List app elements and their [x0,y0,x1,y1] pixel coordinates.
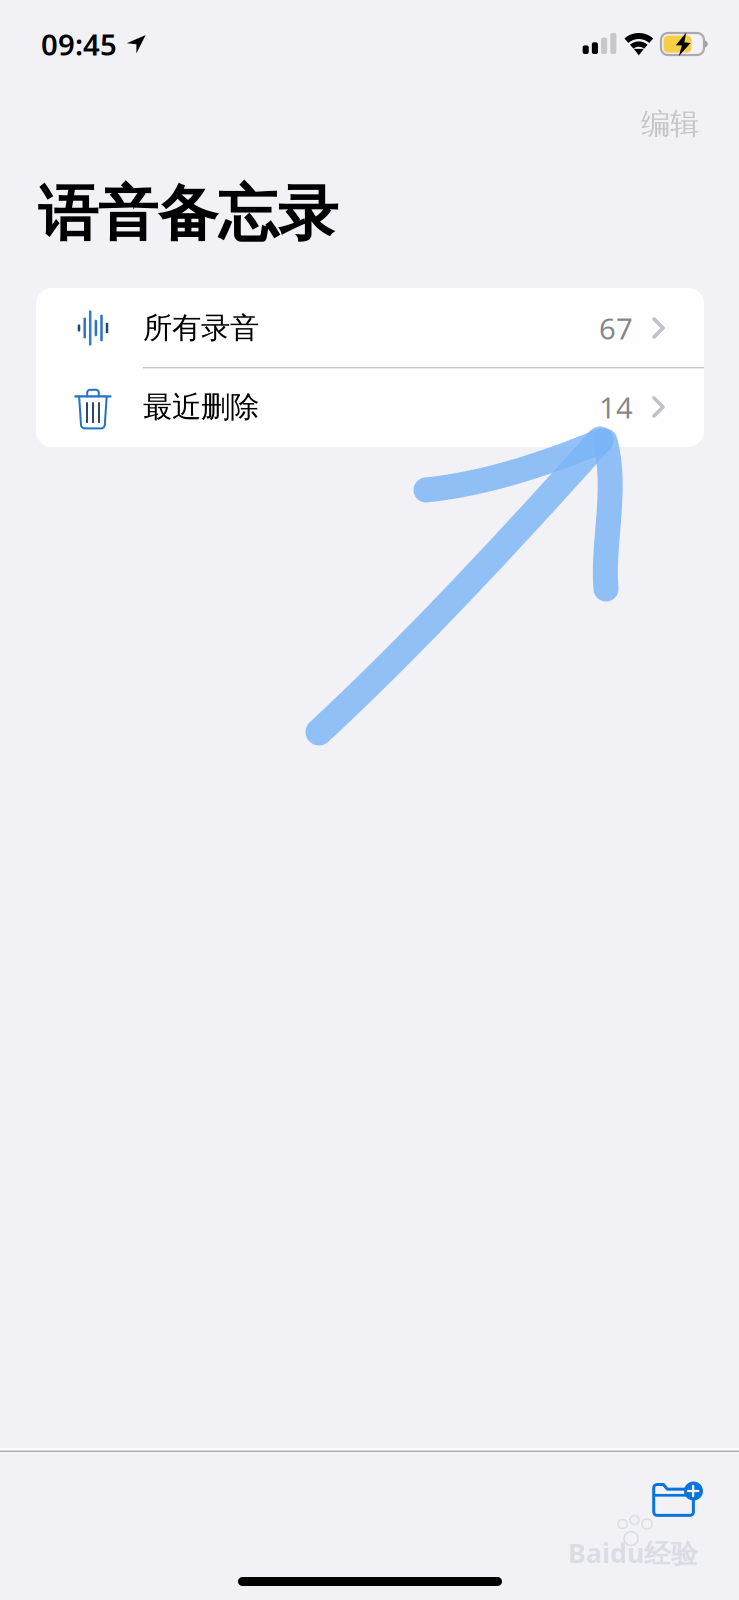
staticText: 编辑 [641,106,699,142]
button[interactable]: 新建文件夹 [645,1472,711,1528]
staticText: 67 [599,308,633,347]
button[interactable]: 最近删除 [36,367,704,446]
staticText: 语音备忘录 [38,177,338,251]
staticText: 所有录音 [143,310,259,346]
button[interactable]: 所有录音 [36,288,704,367]
staticText: Baidu经验 [568,1535,698,1571]
button[interactable]: 编辑 [628,101,712,147]
staticText: 14 [599,387,633,426]
staticText: 09:45 [41,24,117,63]
staticText: 最近删除 [143,389,259,425]
